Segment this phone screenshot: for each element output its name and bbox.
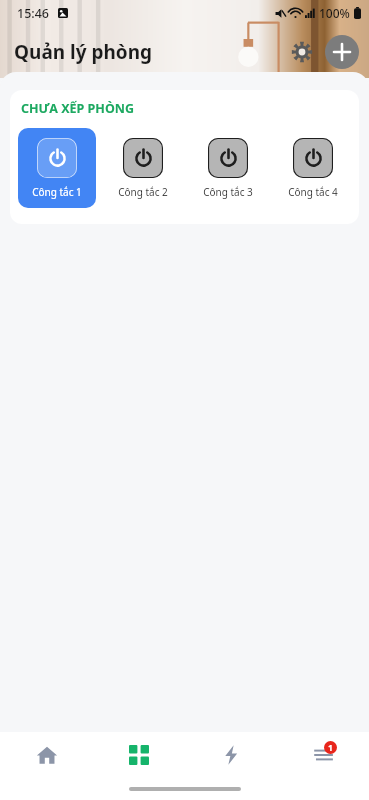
button[interactable]: Công tắc 1 bbox=[18, 128, 96, 208]
button[interactable]: Home bbox=[0, 732, 93, 778]
staticText: Công tắc 4 bbox=[288, 185, 338, 199]
staticText: 15:46 bbox=[17, 5, 50, 22]
button[interactable]: Automation bbox=[185, 732, 277, 778]
button[interactable]: Add room bbox=[325, 35, 359, 69]
staticText: 1 bbox=[328, 742, 333, 754]
staticText: CHƯA XẾP PHÒNG bbox=[21, 100, 134, 117]
button[interactable]: Công tắc 2 bbox=[104, 128, 181, 208]
staticText: Quản lý phòng bbox=[14, 39, 153, 65]
staticText: Công tắc 2 bbox=[118, 185, 168, 199]
staticText: 100% bbox=[319, 5, 350, 21]
button[interactable]: Công tắc 4 bbox=[274, 128, 351, 208]
staticText: Công tắc 3 bbox=[203, 185, 253, 199]
button[interactable]: Devices bbox=[93, 732, 185, 778]
button[interactable]: Công tắc 3 bbox=[189, 128, 266, 208]
button[interactable]: Settings bbox=[283, 33, 321, 71]
button[interactable]: CHƯA XẾP PHÒNG bbox=[10, 90, 359, 126]
staticText: Công tắc 1 bbox=[32, 185, 82, 199]
button[interactable]: Menu bbox=[277, 732, 369, 778]
